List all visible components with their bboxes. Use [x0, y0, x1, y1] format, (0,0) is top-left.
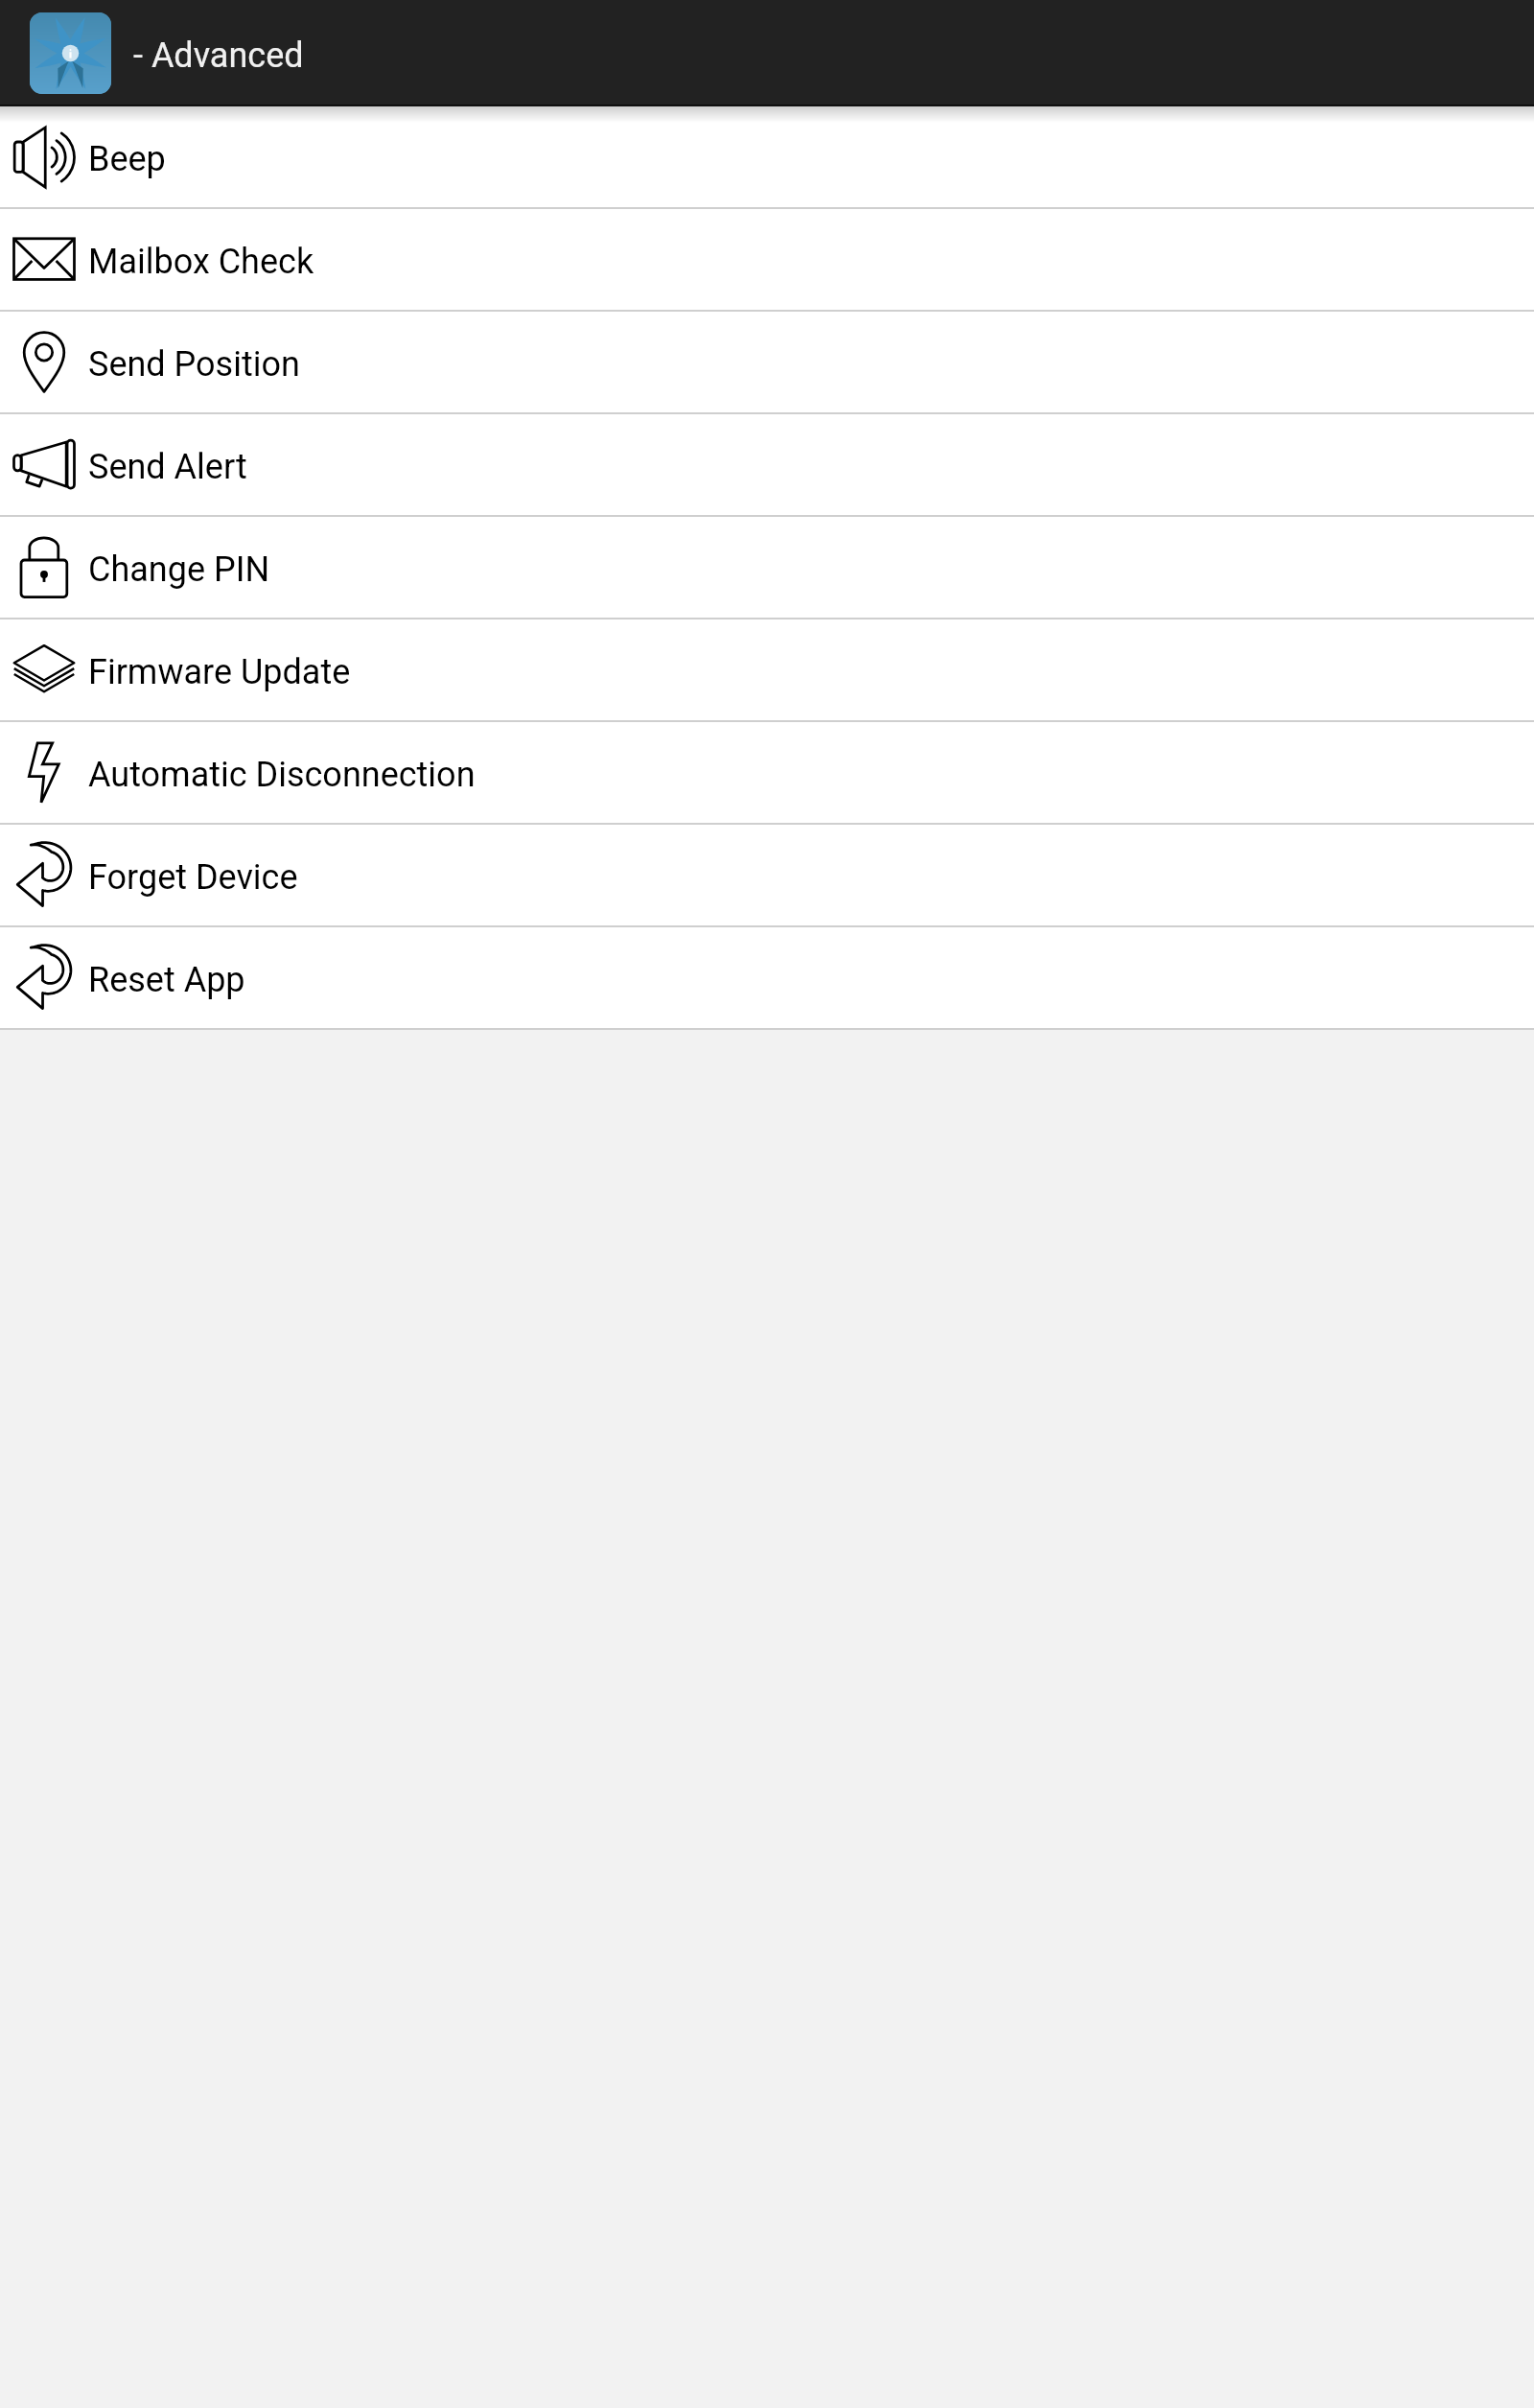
staticText: Reset App	[88, 960, 245, 1000]
staticText: Change PIN	[88, 549, 270, 590]
staticText: Automatic Disconnection	[88, 755, 476, 795]
button[interactable]: Mailbox Check	[0, 209, 1534, 310]
button[interactable]: Automatic Disconnection	[0, 722, 1534, 823]
button[interactable]: Navigate up	[30, 12, 111, 94]
button[interactable]: Firmware Update	[0, 620, 1534, 720]
button[interactable]: Change PIN	[0, 517, 1534, 618]
button[interactable]: Forget Device	[0, 825, 1534, 925]
staticText: Mailbox Check	[88, 242, 314, 282]
staticText: Send Position	[88, 344, 300, 385]
button[interactable]: Send Position	[0, 312, 1534, 412]
button[interactable]: Send Alert	[0, 414, 1534, 515]
staticText: Send Alert	[88, 447, 247, 487]
button[interactable]: Beep	[0, 106, 1534, 207]
button[interactable]: Reset App	[0, 927, 1534, 1028]
staticText: Firmware Update	[88, 652, 351, 692]
staticText: - Advanced	[133, 35, 304, 76]
staticText: Forget Device	[88, 857, 298, 898]
staticText: Beep	[88, 139, 166, 179]
